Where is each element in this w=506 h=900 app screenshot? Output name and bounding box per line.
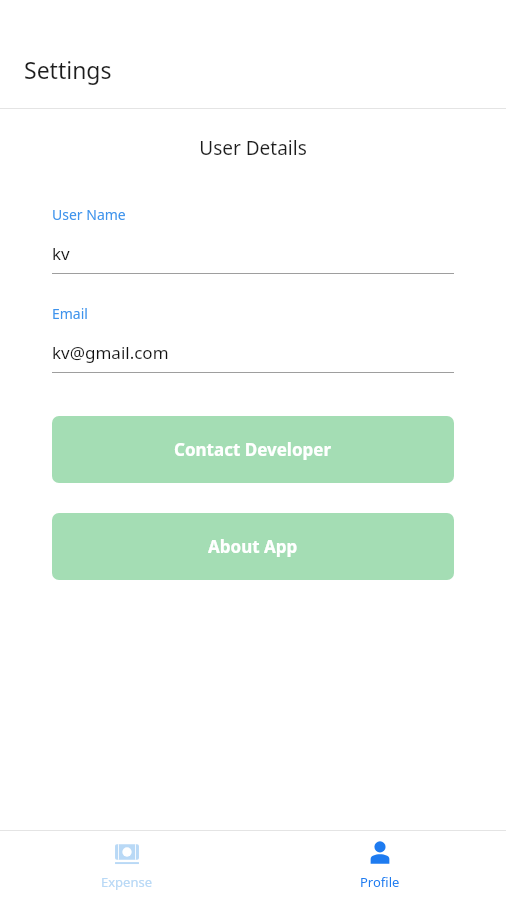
button[interactable]: Email — [52, 304, 454, 373]
staticText: Expense — [101, 873, 153, 891]
button[interactable]: Profile — [253, 834, 506, 897]
staticText: User Name — [52, 205, 126, 224]
staticText: Profile — [360, 873, 400, 891]
staticText: Settings — [24, 54, 112, 85]
other: Profile — [367, 840, 393, 866]
staticText: kv — [52, 242, 70, 265]
staticText: kv@gmail.com — [52, 341, 169, 364]
staticText: About App — [208, 535, 298, 558]
button[interactable]: Contact Developer — [52, 416, 454, 483]
staticText: Email — [52, 304, 88, 323]
button[interactable]: Expense — [0, 834, 253, 897]
staticText: Contact Developer — [174, 438, 332, 461]
other: Expense — [114, 840, 140, 866]
button[interactable]: About App — [52, 513, 454, 580]
staticText: User Details — [0, 135, 506, 161]
button[interactable]: User Name — [52, 205, 454, 274]
